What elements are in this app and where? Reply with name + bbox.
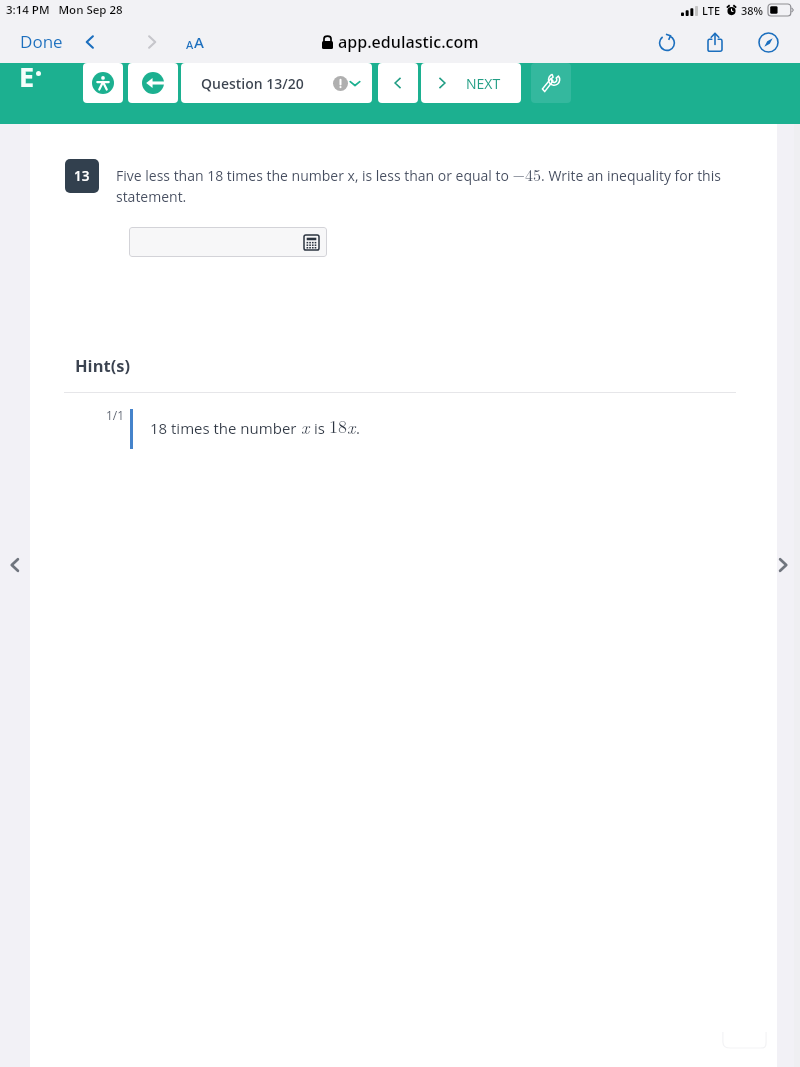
button[interactable]: NEXT — [421, 63, 521, 103]
staticText: 18 — [329, 413, 347, 439]
staticText: is — [310, 418, 329, 438]
button[interactable] — [129, 227, 327, 257]
button[interactable]: Tabs — [753, 27, 783, 57]
staticText: NEXT — [466, 74, 501, 93]
staticText: x — [347, 414, 356, 439]
staticText: 1/1 — [106, 407, 125, 423]
staticText: E — [19, 58, 35, 95]
button[interactable]: Text size — [186, 32, 204, 52]
button[interactable]: Exit — [128, 63, 178, 103]
button[interactable]: Question 13/20 — [181, 63, 372, 103]
staticText: 3:14 PM Mon Sep 28 — [6, 2, 123, 18]
staticText: Done — [20, 30, 63, 53]
staticText: app.edulastic.com — [338, 31, 479, 53]
staticText: Question 13/20 — [201, 74, 304, 93]
staticText: 18 times the number — [150, 418, 301, 438]
button[interactable]: Next — [771, 545, 794, 585]
button[interactable]: Forward — [138, 28, 166, 56]
staticText: x — [301, 414, 310, 439]
button[interactable]: Back — [76, 28, 104, 56]
staticText: Hint(s) — [75, 354, 131, 376]
staticText: 38% — [741, 3, 764, 18]
staticText: 13 — [74, 167, 90, 185]
button[interactable]: Previous — [0, 545, 30, 585]
staticText: . — [356, 418, 360, 438]
staticText: LTE — [702, 3, 721, 18]
staticText: A — [186, 37, 194, 52]
button[interactable]: Reload — [652, 27, 682, 57]
button[interactable]: Done — [18, 26, 65, 57]
staticText: A — [194, 32, 204, 52]
staticText: Five less than 18 times the number x, is… — [116, 163, 728, 207]
button[interactable]: Share — [700, 27, 730, 57]
button[interactable]: Accessibility — [83, 63, 123, 103]
button[interactable]: Previous question — [378, 63, 418, 103]
button[interactable]: Tools — [531, 63, 571, 103]
